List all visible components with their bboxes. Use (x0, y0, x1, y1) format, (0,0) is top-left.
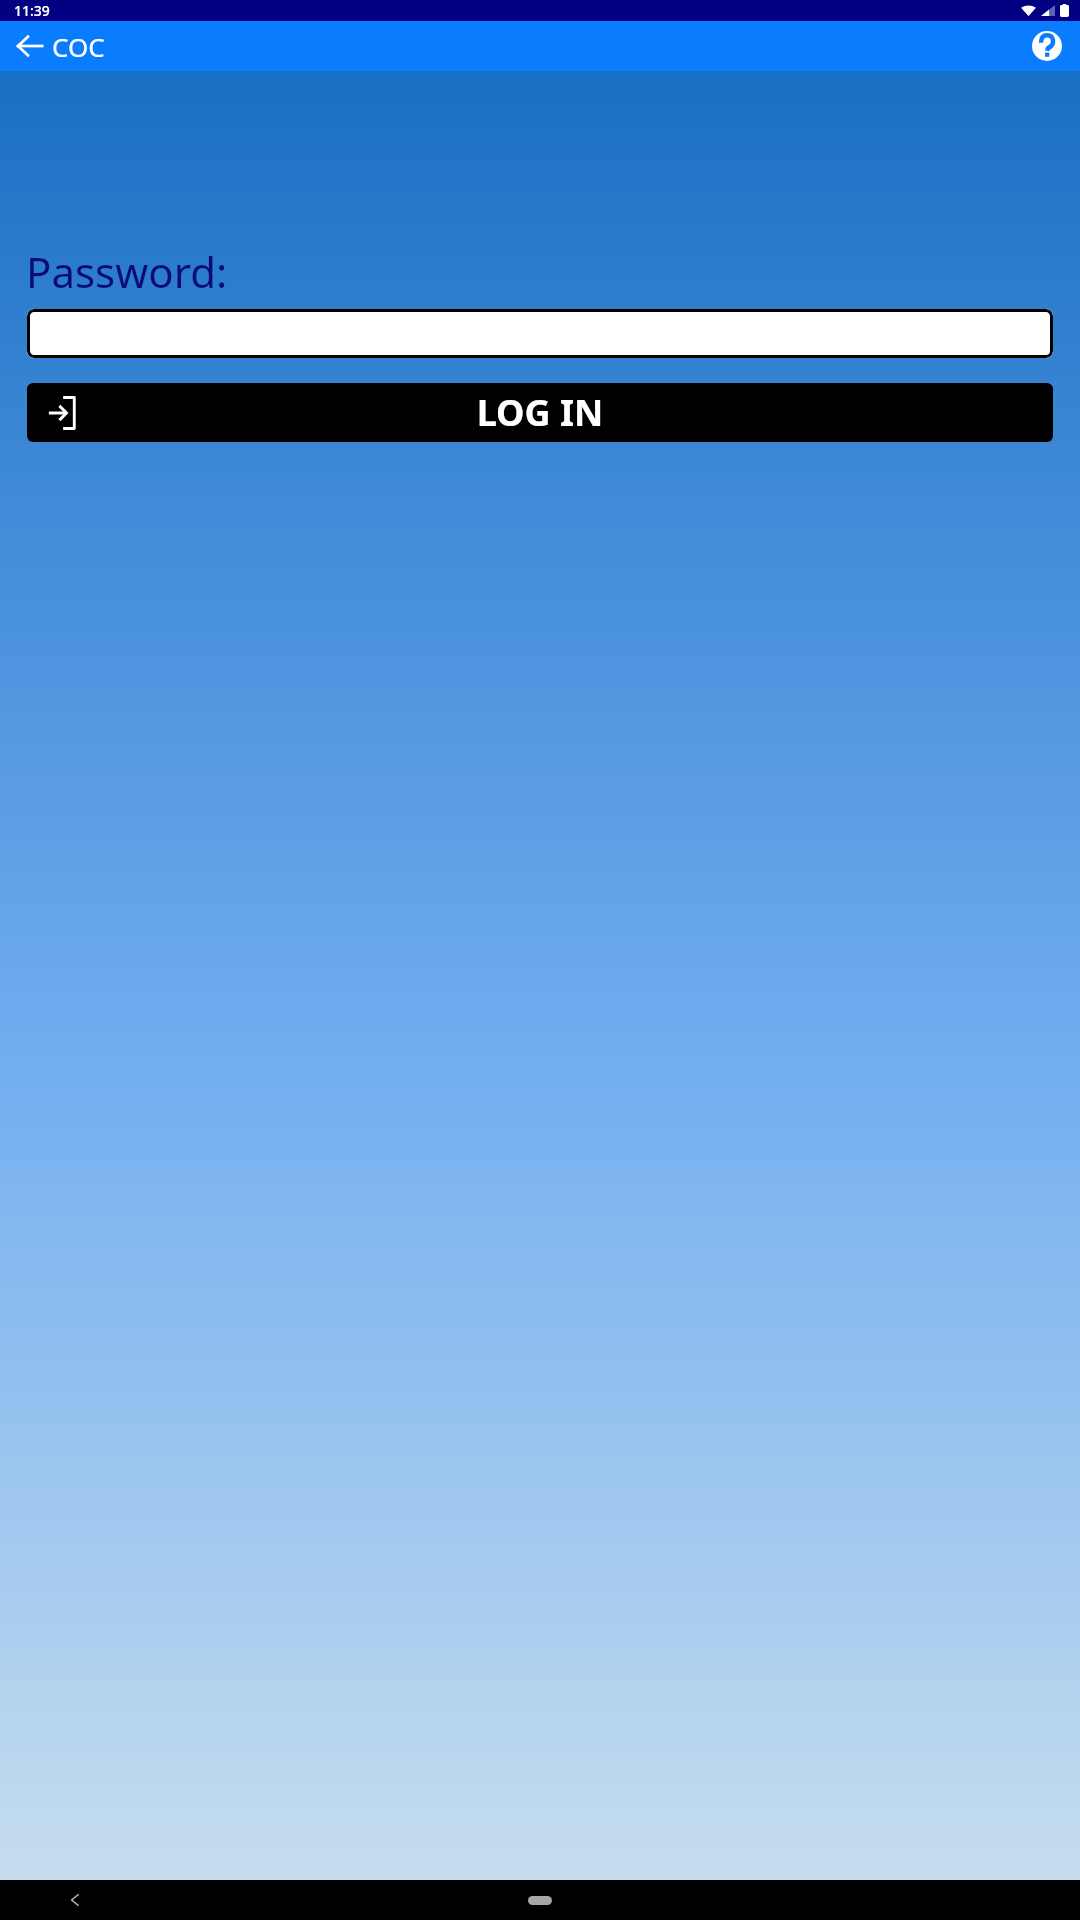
button[interactable]: Back (6, 22, 54, 70)
staticText: 11:39 (14, 1, 50, 20)
button[interactable]: Back (55, 1880, 95, 1920)
button[interactable]: Help (1023, 22, 1071, 70)
staticText: COC (52, 29, 105, 64)
button[interactable]: Password input (27, 309, 1053, 358)
button[interactable]: LOG IN (27, 383, 1053, 442)
staticText: Password: (26, 243, 228, 300)
button[interactable]: Home (510, 1887, 570, 1913)
staticText: LOG IN (27, 388, 1053, 437)
